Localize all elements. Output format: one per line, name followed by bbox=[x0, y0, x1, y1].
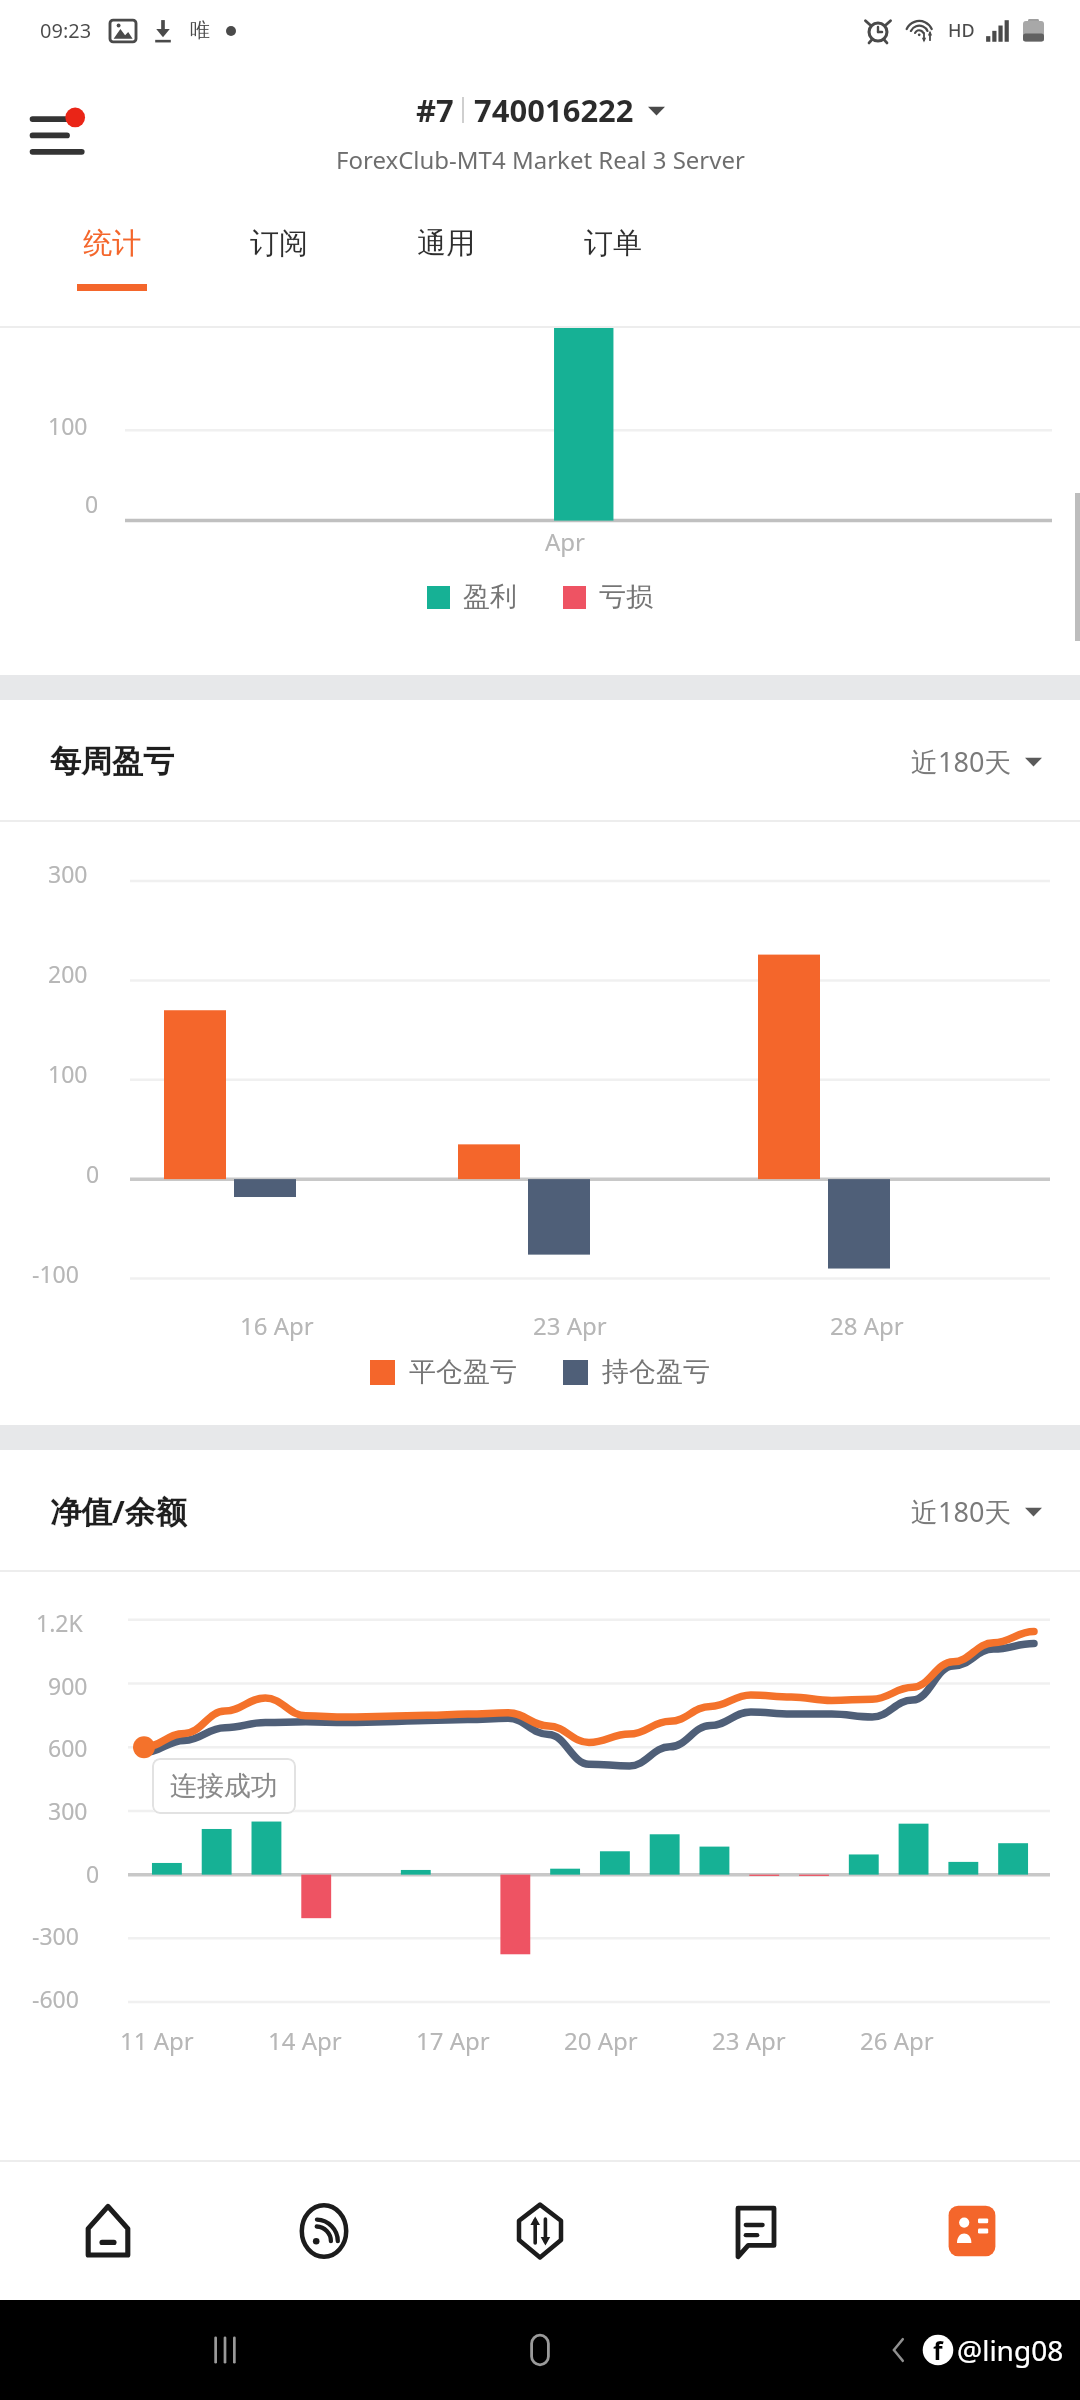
staticText: 平仓盈亏 bbox=[409, 1355, 517, 1389]
button[interactable]: 近180天 bbox=[911, 1493, 1042, 1530]
staticText: 通用 bbox=[417, 225, 475, 262]
staticText: 净值/余额 bbox=[50, 1490, 187, 1532]
staticText: 09:23 bbox=[40, 17, 92, 44]
staticText: 订单 bbox=[584, 225, 642, 262]
button[interactable]: Home bbox=[513, 2323, 567, 2377]
staticText: 300 bbox=[48, 858, 88, 889]
button[interactable]: 近180天 bbox=[911, 743, 1042, 780]
staticText: 14 Apr bbox=[268, 2024, 342, 2057]
staticText: 23 Apr bbox=[533, 1309, 607, 1342]
staticText: 连接成功 bbox=[170, 1769, 278, 1803]
staticText: 1.2K bbox=[36, 1607, 83, 1638]
staticText: 统计 bbox=[83, 225, 141, 262]
button[interactable]: Messages bbox=[648, 2162, 864, 2300]
staticText: -100 bbox=[32, 1258, 79, 1289]
staticText: 唯 bbox=[190, 18, 210, 43]
button[interactable]: 订单 bbox=[529, 205, 696, 328]
button[interactable]: Signals bbox=[216, 2162, 432, 2300]
button[interactable]: #7 bbox=[416, 89, 665, 131]
staticText: 100 bbox=[48, 410, 88, 441]
staticText: f bbox=[933, 2333, 943, 2367]
staticText: -300 bbox=[32, 1920, 79, 1951]
staticText: 26 Apr bbox=[860, 2024, 934, 2057]
button[interactable]: Profile bbox=[864, 2162, 1080, 2300]
staticText: 900 bbox=[48, 1670, 88, 1701]
staticText: 28 Apr bbox=[830, 1309, 904, 1342]
staticText: 0 bbox=[86, 1858, 100, 1889]
staticText: -600 bbox=[32, 1983, 79, 2014]
button[interactable]: Trade bbox=[432, 2162, 648, 2300]
staticText: 200 bbox=[48, 958, 88, 989]
button[interactable]: 统计 bbox=[28, 205, 195, 328]
staticText: 0 bbox=[85, 488, 99, 519]
staticText: 17 Apr bbox=[416, 2024, 490, 2057]
staticText: 740016222 bbox=[474, 89, 634, 131]
staticText: HD bbox=[948, 18, 975, 43]
staticText: ForexClub-MT4 Market Real 3 Server bbox=[336, 143, 745, 176]
staticText: 100 bbox=[48, 1058, 88, 1089]
staticText: @ling08 bbox=[957, 2331, 1064, 2369]
staticText: 近180天 bbox=[911, 743, 1012, 780]
button[interactable]: Recents bbox=[200, 2325, 250, 2375]
staticText: 盈利 bbox=[463, 580, 517, 614]
staticText: 持仓盈亏 bbox=[602, 1355, 710, 1389]
staticText: 亏损 bbox=[599, 580, 653, 614]
staticText: 近180天 bbox=[911, 1493, 1012, 1530]
button[interactable]: 通用 bbox=[362, 205, 529, 328]
button[interactable]: Home bbox=[0, 2162, 216, 2300]
staticText: 600 bbox=[48, 1732, 88, 1763]
staticText: 每周盈亏 bbox=[50, 742, 174, 781]
staticText: 16 Apr bbox=[240, 1309, 314, 1342]
staticText: Apr bbox=[545, 525, 586, 558]
staticText: 订阅 bbox=[250, 225, 308, 262]
staticText: 20 Apr bbox=[564, 2024, 638, 2057]
staticText: 11 Apr bbox=[120, 2024, 194, 2057]
staticText: 0 bbox=[86, 1158, 100, 1189]
staticText: #7 bbox=[416, 89, 454, 131]
button[interactable]: Menu bbox=[26, 92, 108, 174]
button[interactable]: 订阅 bbox=[195, 205, 362, 328]
staticText: 300 bbox=[48, 1795, 88, 1826]
staticText: 23 Apr bbox=[712, 2024, 786, 2057]
